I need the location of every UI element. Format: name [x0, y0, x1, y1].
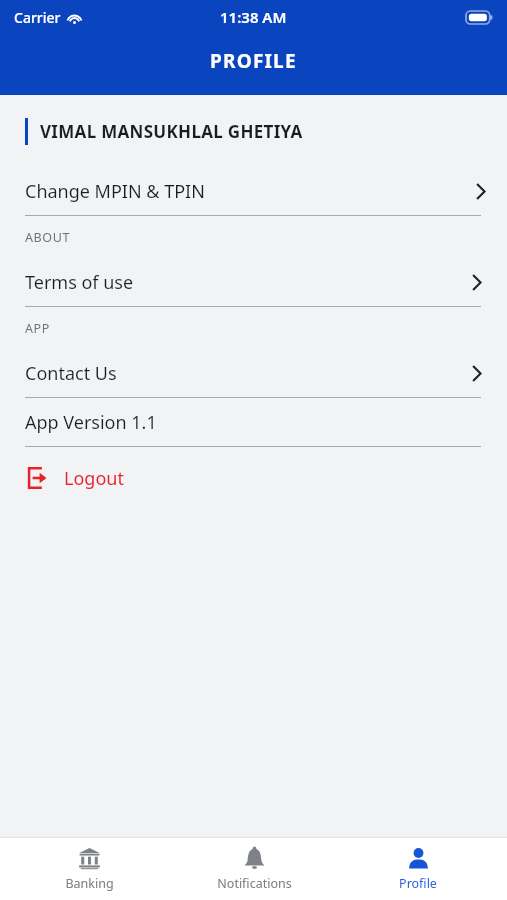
staticText: 11:38 AM: [220, 7, 287, 27]
button[interactable]: Notifications: [179, 847, 329, 892]
staticText: Notifications: [217, 875, 292, 892]
button[interactable]: Logout: [0, 447, 507, 509]
button[interactable]: Banking: [14, 847, 164, 892]
staticText: Profile: [399, 875, 437, 892]
staticText: Logout: [64, 466, 124, 491]
staticText: Banking: [65, 875, 114, 892]
button[interactable]: Terms of use: [0, 258, 507, 306]
staticText: Contact Us: [25, 361, 117, 386]
staticText: App Version 1.1: [25, 410, 157, 435]
staticText: VIMAL MANSUKHLAL GHETIYA: [40, 120, 303, 143]
staticText: Carrier: [14, 8, 61, 27]
staticText: ABOUT: [25, 229, 70, 246]
button[interactable]: App Version 1.1: [0, 398, 507, 446]
staticText: PROFILE: [210, 48, 297, 74]
button[interactable]: VIMAL MANSUKHLAL GHETIYA: [0, 95, 507, 167]
button[interactable]: Contact Us: [0, 349, 507, 397]
staticText: Change MPIN & TPIN: [25, 179, 205, 204]
button[interactable]: Profile: [343, 847, 493, 892]
button[interactable]: Change MPIN & TPIN: [0, 167, 507, 215]
staticText: Terms of use: [25, 270, 134, 295]
staticText: APP: [25, 320, 50, 337]
